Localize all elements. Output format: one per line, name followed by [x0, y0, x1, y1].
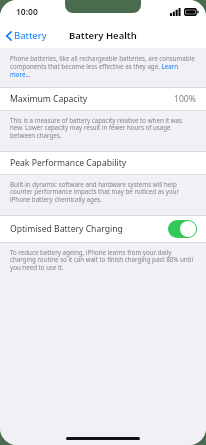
staticText: Battery Health [69, 29, 137, 42]
staticText: Peak Performance Capability [10, 157, 127, 169]
button[interactable]: Optimised Battery Charging toggle, on [168, 220, 197, 238]
staticText: Built-in dynamic software and hardware s… [10, 180, 196, 204]
staticText: To reduce battery ageing, iPhone learns … [10, 248, 196, 272]
button[interactable]: Optimised Battery Charging [0, 216, 206, 242]
staticText: Phone batteries, like all rechargeable b… [10, 54, 196, 78]
staticText: Battery [14, 29, 47, 42]
button[interactable]: Peak Performance Capability [0, 152, 206, 174]
staticText: Maximum Capacity [10, 93, 174, 105]
staticText: This is a measure of battery capacity re… [10, 116, 196, 140]
button[interactable]: Maximum Capacity [0, 88, 206, 110]
staticText: 100% [174, 93, 196, 105]
staticText: Optimised Battery Charging [10, 223, 168, 235]
staticText: 10:00 [16, 6, 38, 18]
button[interactable]: Battery [0, 25, 53, 46]
